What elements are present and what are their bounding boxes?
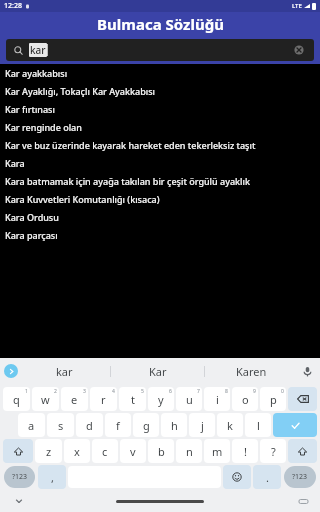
staticText: w (41, 392, 50, 407)
button[interactable]: Kara (0, 154, 320, 172)
staticText: 0 (281, 388, 284, 395)
button[interactable]: Kara batmamak için ayağa takılan bir çeş… (0, 172, 320, 190)
button[interactable]: g (133, 413, 159, 437)
button[interactable]: f (105, 413, 131, 437)
button[interactable]: Kara Ordusu (0, 208, 320, 226)
button[interactable]: t (119, 387, 146, 411)
staticText: r (101, 392, 106, 407)
button[interactable]: Enter (273, 413, 317, 437)
button[interactable]: r (90, 387, 117, 411)
staticText: u (186, 392, 193, 407)
staticText: i (216, 392, 219, 407)
button[interactable]: c (92, 439, 118, 463)
staticText: s (58, 418, 64, 433)
staticText: Karen (236, 364, 267, 379)
staticText: j (201, 418, 204, 433)
button[interactable]: Kar ayakkabısı (0, 64, 320, 82)
staticText: ?123 (12, 472, 28, 482)
button[interactable]: Kara parçası (0, 226, 320, 244)
staticText: 1 (25, 388, 28, 395)
button[interactable]: u (176, 387, 202, 411)
button[interactable]: z (35, 439, 62, 463)
button[interactable]: kar (6, 39, 314, 61)
button[interactable]: Clear search (292, 43, 306, 57)
button[interactable]: Kar ve buz üzerinde kayarak hareket eden… (0, 136, 320, 154)
staticText: 6 (169, 388, 172, 395)
button[interactable]: ?123 (284, 466, 316, 488)
staticText: 7 (197, 388, 200, 395)
button[interactable]: s (47, 413, 74, 437)
button[interactable]: . (253, 465, 281, 489)
staticText: Kar ve buz üzerinde kayarak hareket eden… (5, 139, 256, 151)
button[interactable]: ?123 (4, 466, 35, 488)
staticText: x (74, 444, 80, 459)
button[interactable]: Kar fırtınası (0, 100, 320, 118)
staticText: v (130, 444, 136, 459)
button[interactable]: Karen (205, 358, 298, 384)
staticText: Kara Kuvvetleri Komutanlığı (kısaca) (5, 193, 160, 205)
staticText: 9 (253, 388, 256, 395)
button[interactable]: Kar renginde olan (0, 118, 320, 136)
button[interactable]: Kara Kuvvetleri Komutanlığı (kısaca) (0, 190, 320, 208)
staticText: 8 (225, 388, 228, 395)
button[interactable]: ? (260, 439, 286, 463)
button[interactable]: q (3, 387, 30, 411)
button[interactable]: w (32, 387, 59, 411)
button[interactable]: Shift (3, 439, 33, 463)
button[interactable]: m (204, 439, 230, 463)
staticText: Kara (5, 157, 25, 169)
staticText: y (158, 392, 164, 407)
button[interactable]: y (148, 387, 174, 411)
button[interactable]: h (161, 413, 187, 437)
button[interactable]: x (64, 439, 90, 463)
button[interactable]: Backspace (288, 387, 317, 411)
staticText: k (227, 418, 233, 433)
button[interactable]: ! (232, 439, 258, 463)
staticText: ? (271, 444, 276, 459)
button[interactable]: j (189, 413, 215, 437)
button[interactable]: e (61, 387, 88, 411)
staticText: 5 (141, 388, 144, 395)
button[interactable]: k (217, 413, 243, 437)
button[interactable]: o (232, 387, 258, 411)
staticText: 4 (112, 388, 115, 395)
button[interactable]: Kar Ayaklığı, Tokaçlı Kar Ayakkabısı (0, 82, 320, 100)
staticText: m (212, 444, 223, 459)
staticText: ! (244, 444, 247, 459)
staticText: 3 (83, 388, 86, 395)
staticText: a (28, 418, 35, 433)
button[interactable]: a (18, 413, 45, 437)
button[interactable]: b (148, 439, 174, 463)
button[interactable]: p (260, 387, 286, 411)
button[interactable]: i (204, 387, 230, 411)
button[interactable]: d (76, 413, 103, 437)
staticText: . (266, 470, 269, 485)
staticText: Kar fırtınası (5, 103, 55, 115)
button[interactable]: v (120, 439, 146, 463)
staticText: p (270, 392, 277, 407)
button[interactable]: Voice input (298, 362, 316, 380)
staticText: h (171, 418, 178, 433)
button[interactable]: l (245, 413, 271, 437)
staticText: Kar renginde olan (5, 121, 82, 133)
staticText: 12:28 (4, 1, 22, 11)
button[interactable]: Shift (288, 439, 317, 463)
button[interactable]: Kar (111, 358, 204, 384)
staticText: kar (30, 43, 46, 57)
button[interactable]: n (176, 439, 202, 463)
button[interactable]: , (38, 465, 66, 489)
button[interactable]: Switch keyboard (296, 494, 310, 508)
button[interactable]: Hide keyboard (12, 494, 26, 508)
button[interactable]: More suggestions (4, 364, 18, 378)
staticText: , (51, 470, 54, 485)
button[interactable]: kar (18, 358, 110, 384)
staticText: e (71, 392, 78, 407)
button[interactable]: Emoji (223, 465, 251, 489)
staticText: Kar ayakkabısı (5, 67, 68, 79)
staticText: l (257, 418, 260, 433)
staticText: q (13, 392, 20, 407)
staticText: Kara parçası (5, 229, 58, 241)
staticText: f (116, 418, 120, 433)
staticText: kar (56, 364, 73, 379)
